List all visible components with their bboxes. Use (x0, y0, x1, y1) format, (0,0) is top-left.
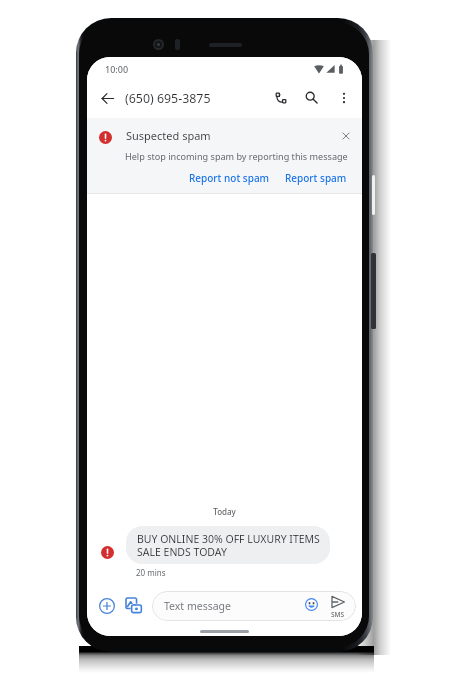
button[interactable]: Emoji (302, 595, 320, 613)
staticText: 20 mins (136, 567, 166, 578)
button[interactable]: Dismiss (337, 127, 355, 145)
staticText: Report spam (285, 171, 347, 185)
staticText: Report not spam (189, 171, 270, 185)
staticText: Suspected spam (126, 128, 211, 143)
button[interactable]: Text message (152, 591, 356, 621)
button[interactable]: Back (94, 85, 120, 111)
staticText: BUY ONLINE 30% OFF LUXURY ITEMS SALE END… (137, 532, 320, 559)
staticText: SMS (331, 610, 345, 619)
staticText: 10:00 (105, 63, 129, 75)
staticText: Help stop incoming spam by reporting thi… (125, 150, 348, 162)
button[interactable]: More options (330, 84, 357, 111)
button[interactable]: Call (267, 84, 294, 111)
button[interactable]: Gallery (122, 594, 144, 616)
staticText: Text message (164, 599, 231, 613)
button[interactable]: Report not spam (185, 168, 274, 188)
button[interactable]: Report spam (281, 168, 351, 188)
button[interactable]: BUY ONLINE 30% OFF LUXURY ITEMS SALE END… (126, 526, 330, 564)
staticText: (650) 695-3875 (125, 90, 211, 107)
button[interactable]: Add attachment (96, 595, 118, 617)
button[interactable]: Search (298, 84, 325, 111)
button[interactable]: Send SMS (330, 595, 346, 619)
staticText: Today (87, 506, 362, 517)
